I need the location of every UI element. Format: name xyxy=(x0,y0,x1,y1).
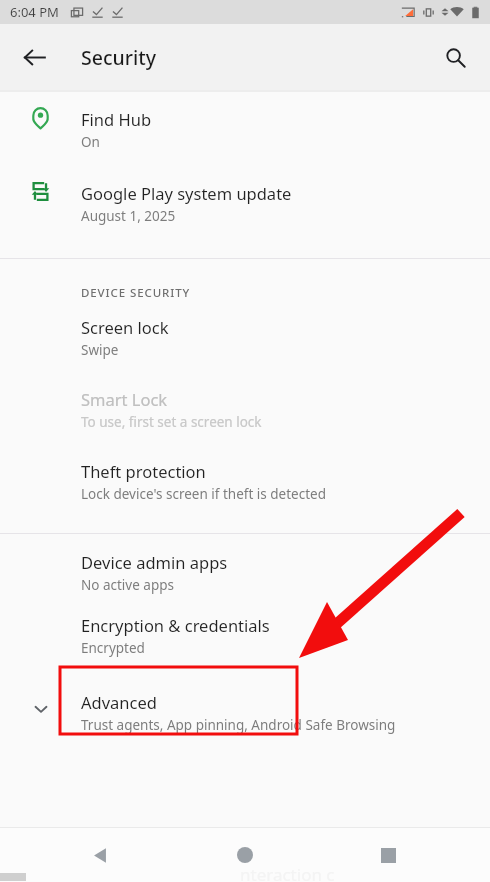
button[interactable]: Back xyxy=(10,33,58,81)
staticText: Smart Lock xyxy=(81,388,168,410)
button[interactable]: Find Hub xyxy=(0,98,490,172)
staticText: Advanced xyxy=(81,691,157,713)
staticText: Find Hub xyxy=(81,108,152,130)
button[interactable]: Back xyxy=(76,831,124,879)
button[interactable]: Screen lock xyxy=(0,311,490,383)
button[interactable]: Search xyxy=(432,34,478,80)
staticText: Encrypted xyxy=(81,639,145,657)
staticText: Encryption & credentials xyxy=(81,614,270,636)
staticText: 6:04 PM xyxy=(10,3,59,21)
staticText: On xyxy=(81,133,100,151)
button[interactable]: Google Play system update xyxy=(0,172,490,244)
staticText: Lock device's screen if theft is detecte… xyxy=(81,485,326,503)
staticText: To use, first set a screen lock xyxy=(81,413,262,431)
staticText: DEVICE SECURITY xyxy=(81,285,191,301)
button[interactable]: Theft protection xyxy=(0,455,490,527)
staticText: Screen lock xyxy=(81,316,169,338)
button[interactable]: Home xyxy=(221,831,269,879)
button[interactable]: Recent apps xyxy=(364,831,412,879)
button[interactable]: Encryption & credentials xyxy=(0,606,490,674)
staticText: No active apps xyxy=(81,576,174,594)
staticText: Google Play system update xyxy=(81,182,292,204)
staticText: Security xyxy=(81,44,156,71)
button[interactable]: Advanced xyxy=(0,680,490,754)
staticText: Device admin apps xyxy=(81,551,228,573)
staticText: August 1, 2025 xyxy=(81,207,176,225)
staticText: Swipe xyxy=(81,341,119,359)
staticText: Theft protection xyxy=(81,460,206,482)
staticText: Trust agents, App pinning, Android Safe … xyxy=(81,716,396,734)
button[interactable]: Device admin apps xyxy=(0,534,490,606)
button[interactable]: Smart Lock xyxy=(0,383,490,455)
